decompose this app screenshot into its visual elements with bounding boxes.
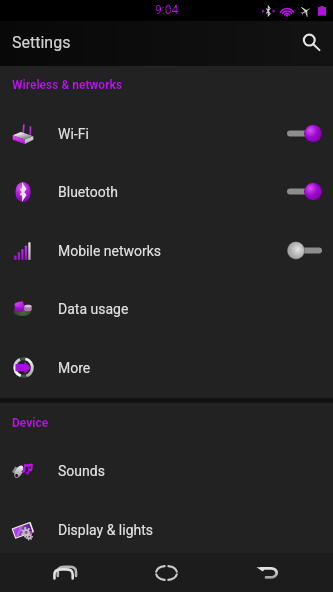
- button[interactable]: Back: [13, 553, 117, 592]
- button[interactable]: Sounds: [0, 441, 333, 500]
- staticText: Bluetooth: [58, 184, 118, 200]
- staticText: Data usage: [58, 301, 129, 317]
- staticText: Settings: [12, 33, 71, 52]
- staticText: Sounds: [58, 463, 105, 479]
- staticText: 9:04: [155, 3, 179, 17]
- button[interactable]: Mobile networks: [0, 221, 333, 280]
- button[interactable]: Wi-Fi switch: [279, 112, 333, 156]
- button[interactable]: Home: [114, 553, 218, 592]
- staticText: Wi-Fi: [58, 126, 89, 142]
- button[interactable]: More: [0, 338, 333, 397]
- button[interactable]: Bluetooth switch: [279, 170, 333, 214]
- button[interactable]: Recent apps: [216, 553, 320, 592]
- button[interactable]: Search: [288, 21, 333, 66]
- button[interactable]: Data usage: [0, 279, 333, 338]
- button[interactable]: Bluetooth: [0, 162, 333, 221]
- button[interactable]: Mobile networks switch: [279, 229, 333, 273]
- staticText: Wireless & networks: [12, 78, 123, 92]
- button[interactable]: Wi-Fi: [0, 104, 333, 163]
- staticText: More: [58, 360, 91, 376]
- staticText: Display & lights: [58, 522, 154, 538]
- staticText: Mobile networks: [58, 243, 162, 259]
- staticText: Device: [12, 416, 49, 430]
- button[interactable]: Display & lights: [0, 500, 333, 559]
